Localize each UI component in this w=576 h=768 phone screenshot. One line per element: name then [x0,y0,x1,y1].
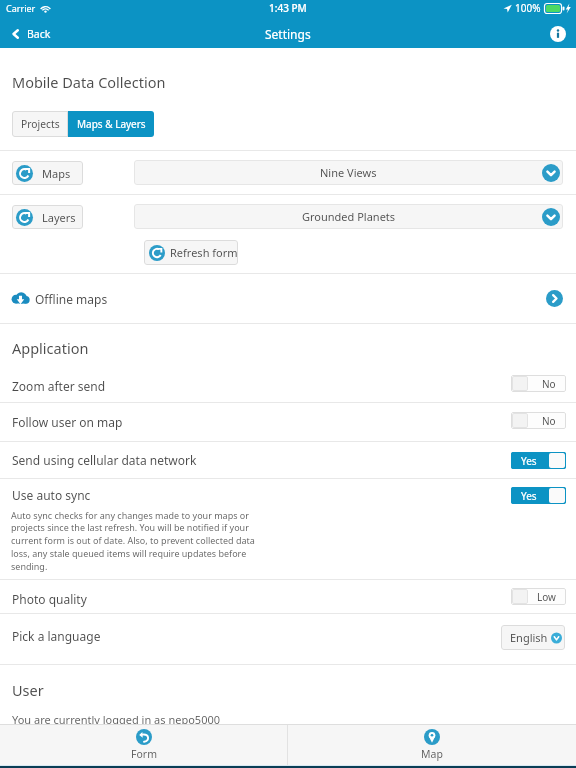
staticText: You are currently logged in as nepo5000 [12,712,221,727]
staticText: Yes [521,489,537,503]
staticText: Projects [21,117,60,131]
button[interactable]: Form [0,725,287,765]
button[interactable]: Refresh form [144,240,238,265]
button[interactable]: Use auto sync [0,479,576,579]
staticText: User [12,680,44,700]
button[interactable]: Yes [511,487,566,504]
button[interactable]: Grounded Planets [134,204,563,229]
staticText: Application [12,338,89,358]
button[interactable]: Zoom after send [0,371,576,401]
button[interactable]: Back [0,20,61,48]
staticText: Mobile Data Collection [12,72,166,92]
button[interactable]: No [511,412,566,429]
button[interactable]: Projects [12,111,68,137]
button[interactable]: Nine Views [134,160,563,185]
staticText: 1:43 PM [269,1,307,15]
staticText: Use auto sync [12,487,91,503]
staticText: Maps [42,166,71,181]
button[interactable]: Follow user on map [0,403,576,441]
button[interactable]: English [501,625,565,650]
button[interactable]: Pick a language [0,614,576,664]
button[interactable]: Map [288,725,576,765]
button[interactable]: Offline maps [0,274,576,323]
staticText: No [542,414,556,428]
staticText: Maps & Layers [77,117,146,131]
staticText: Grounded Planets [302,209,396,224]
staticText: Settings [265,26,311,42]
staticText: Form [131,747,157,761]
staticText: Zoom after send [12,378,106,394]
staticText: 100% [515,1,541,15]
staticText: Nine Views [320,165,377,180]
button[interactable]: Send using cellular data network [0,442,576,478]
staticText: Auto sync checks for any changes made to… [11,509,261,573]
button[interactable]: Photo quality [0,580,576,613]
staticText: Back [27,27,51,41]
staticText: English [510,630,548,645]
button[interactable]: Maps & Layers [68,111,154,137]
button[interactable]: Maps [12,161,83,185]
button[interactable]: Info [540,20,576,48]
staticText: Follow user on map [12,414,123,430]
staticText: Pick a language [12,628,101,644]
staticText: Refresh form [170,245,238,260]
staticText: Send using cellular data network [12,452,197,468]
staticText: No [542,377,556,391]
button[interactable]: Yes [511,452,566,469]
staticText: Yes [521,454,537,468]
button[interactable]: Low [511,588,566,605]
staticText: Layers [42,210,76,225]
staticText: Photo quality [12,591,87,607]
button[interactable]: Layers [12,205,83,229]
staticText: Offline maps [35,291,108,307]
staticText: Map [421,747,443,761]
staticText: Low [537,590,556,604]
button[interactable]: No [511,375,566,392]
staticText: Carrier [6,2,36,14]
